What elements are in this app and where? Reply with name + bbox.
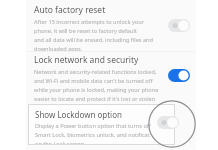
staticText: phone, it will be reset to factory defau… [34,27,156,35]
staticText: on the Lock screen. [35,140,86,145]
button[interactable]: Lock network and security [34,54,164,104]
staticText: easier to locate and protect if it's los… [34,95,156,103]
button[interactable]: Lock network and security toggle [168,69,190,82]
staticText: Show Lockdown option [35,109,122,120]
button[interactable]: Show Lockdown option toggle [157,116,179,129]
button[interactable]: Show Lockdown option [28,104,175,145]
button[interactable]: Auto factory reset [34,4,164,54]
staticText: Auto factory reset [34,4,106,16]
staticText: and Wi-Fi and mobile data can't be turne… [34,77,153,85]
staticText: After 15 incorrect attempts to unlock yo… [34,18,144,26]
button[interactable]: Auto factory reset toggle [168,19,190,32]
staticText: and all data will be erased, including f… [34,36,153,44]
staticText: Lock network and security [34,54,139,66]
staticText: downloaded apps. [34,45,83,53]
staticText: Network and security-related functions l… [34,68,157,76]
staticText: Display a Power button option that turns… [35,122,151,130]
staticText: while your phone is locked, making your … [34,86,159,94]
staticText: Smart Lock, biometrics unlock, and notif… [35,131,150,139]
